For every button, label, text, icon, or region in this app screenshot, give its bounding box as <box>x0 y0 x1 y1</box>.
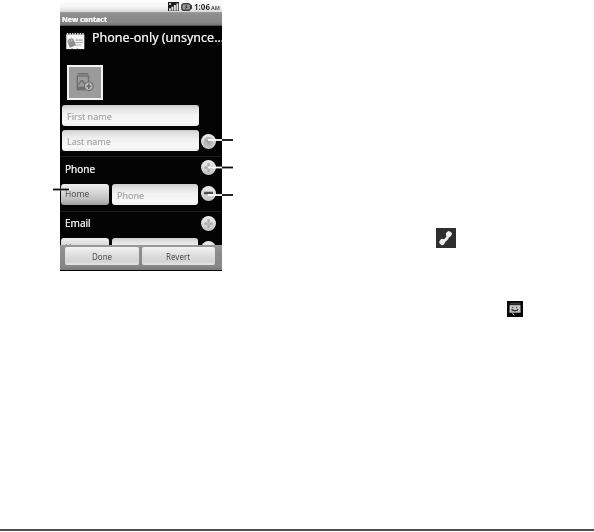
button[interactable]: Email <box>65 216 91 230</box>
button[interactable]: Remove email address <box>201 241 216 256</box>
staticText: Home <box>65 242 90 254</box>
staticText: Last name <box>67 135 111 147</box>
button[interactable]: Revert <box>142 247 215 265</box>
button[interactable]: Home <box>61 184 109 205</box>
staticText: Email <box>117 243 141 255</box>
button[interactable]: First name <box>62 105 199 126</box>
staticText: Done <box>92 251 113 262</box>
button[interactable]: Done <box>65 247 139 265</box>
staticText: Home <box>65 188 90 200</box>
button[interactable]: Add email address <box>201 216 216 231</box>
button[interactable]: Add phone number <box>201 160 216 175</box>
staticText: 1:06 <box>194 1 210 12</box>
staticText: First name <box>67 110 112 122</box>
button[interactable]: Last name <box>62 130 199 151</box>
button[interactable]: Phone-only (unsynce... <box>60 26 222 54</box>
staticText: Phone <box>117 189 145 201</box>
button[interactable]: Home <box>61 238 109 259</box>
staticText: Revert <box>166 251 191 262</box>
button[interactable]: Phone <box>112 184 198 205</box>
button[interactable]: Add contact photo <box>69 67 101 98</box>
button[interactable]: Email <box>112 238 198 259</box>
button[interactable]: Collapse name fields <box>201 134 216 149</box>
staticText: New contact <box>62 14 108 24</box>
button[interactable]: Emoticon <box>507 301 523 317</box>
button[interactable]: Remove phone number <box>201 186 216 201</box>
button[interactable]: Phone <box>436 228 456 248</box>
staticText: Phone-only (unsynce... <box>92 29 222 46</box>
button[interactable]: Phone <box>65 162 96 176</box>
staticText: AM <box>211 4 220 11</box>
